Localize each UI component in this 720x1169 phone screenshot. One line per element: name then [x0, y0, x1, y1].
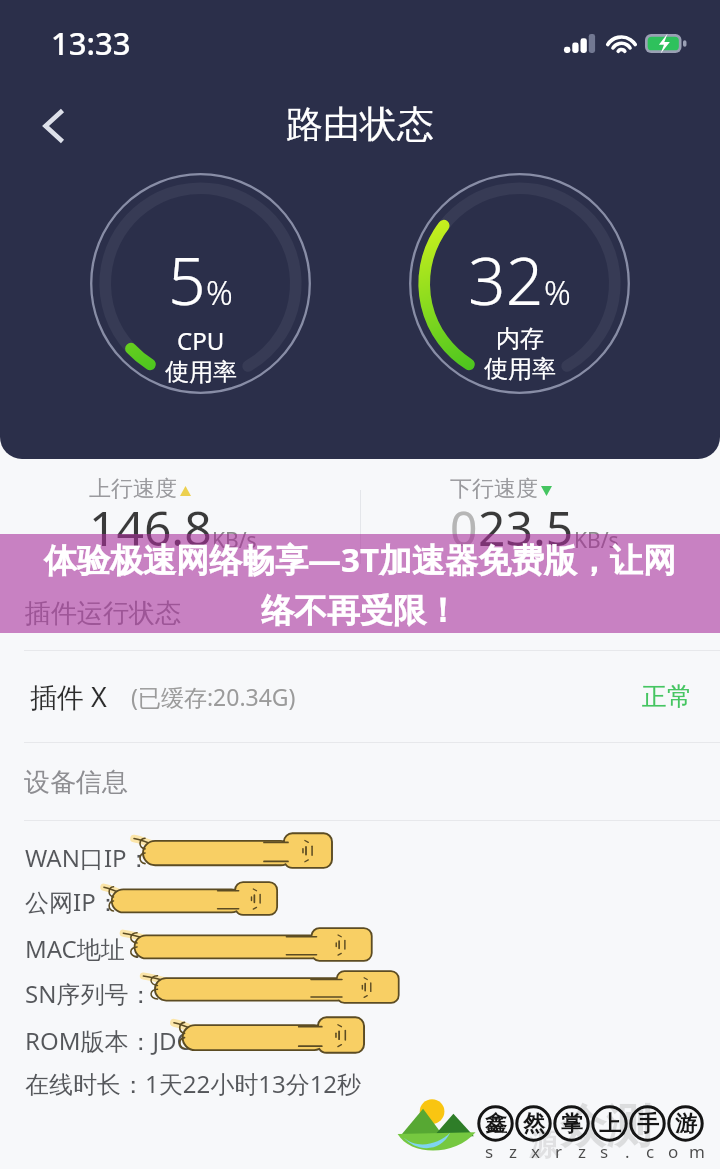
staticText: 设备信息: [24, 766, 128, 799]
staticText: 路由状态: [286, 101, 434, 148]
staticText: MAC地址：: [25, 932, 149, 965]
staticText: 体验极速网络畅享—3T加速器免费版，让网: [44, 537, 676, 582]
staticText: 插件运行状态: [25, 597, 181, 630]
staticText: 13:33: [51, 22, 131, 64]
staticText: 然: [523, 1110, 545, 1138]
staticText: 络不再受限！: [261, 590, 459, 632]
staticText: o: [668, 1140, 679, 1163]
staticText: 上行速度: [89, 475, 177, 503]
staticText: 内存: [496, 324, 544, 354]
staticText: 众测: [560, 1098, 652, 1156]
staticText: WAN口IP：: [25, 841, 151, 874]
staticText: 32: [468, 234, 544, 324]
staticText: %: [544, 270, 571, 315]
staticText: 23.5: [478, 495, 574, 560]
button[interactable]: 插件 X: [0, 651, 720, 742]
staticText: 5: [168, 234, 206, 324]
staticText: s: [600, 1140, 609, 1163]
staticText: (已缓存:20.34G): [131, 681, 296, 712]
staticText: z: [509, 1140, 517, 1163]
staticText: m: [689, 1140, 705, 1163]
staticText: 游: [675, 1110, 697, 1138]
staticText: 使用率: [165, 357, 237, 387]
staticText: 使用率: [484, 354, 556, 384]
staticText: .: [625, 1140, 630, 1163]
staticText: CPU: [177, 324, 225, 357]
staticText: c: [646, 1140, 655, 1163]
staticText: 掌: [561, 1110, 583, 1138]
staticText: r: [555, 1140, 563, 1163]
button[interactable]: Back: [26, 98, 82, 154]
staticText: x: [531, 1140, 540, 1163]
staticText: KB/s: [574, 526, 619, 555]
staticText: z: [578, 1140, 586, 1163]
staticText: %: [206, 270, 233, 315]
staticText: KB/s: [212, 526, 257, 555]
staticText: 源: [528, 1126, 558, 1164]
staticText: 公网IP：: [25, 885, 120, 918]
staticText: 鑫: [485, 1110, 507, 1138]
staticText: 在线时长：1天22小时13分12秒: [25, 1067, 362, 1100]
staticText: 上: [599, 1110, 621, 1138]
staticText: 正常: [642, 681, 692, 712]
staticText: 下行速度: [450, 475, 538, 503]
staticText: 插件 X: [30, 678, 107, 715]
staticText: SN序列号：: [25, 977, 153, 1010]
staticText: ROM版本：JDC: [25, 1024, 192, 1057]
staticText: 手: [637, 1110, 659, 1138]
staticText: s: [485, 1140, 494, 1163]
staticText: 146.8: [89, 495, 212, 560]
staticText: 0: [450, 495, 478, 560]
